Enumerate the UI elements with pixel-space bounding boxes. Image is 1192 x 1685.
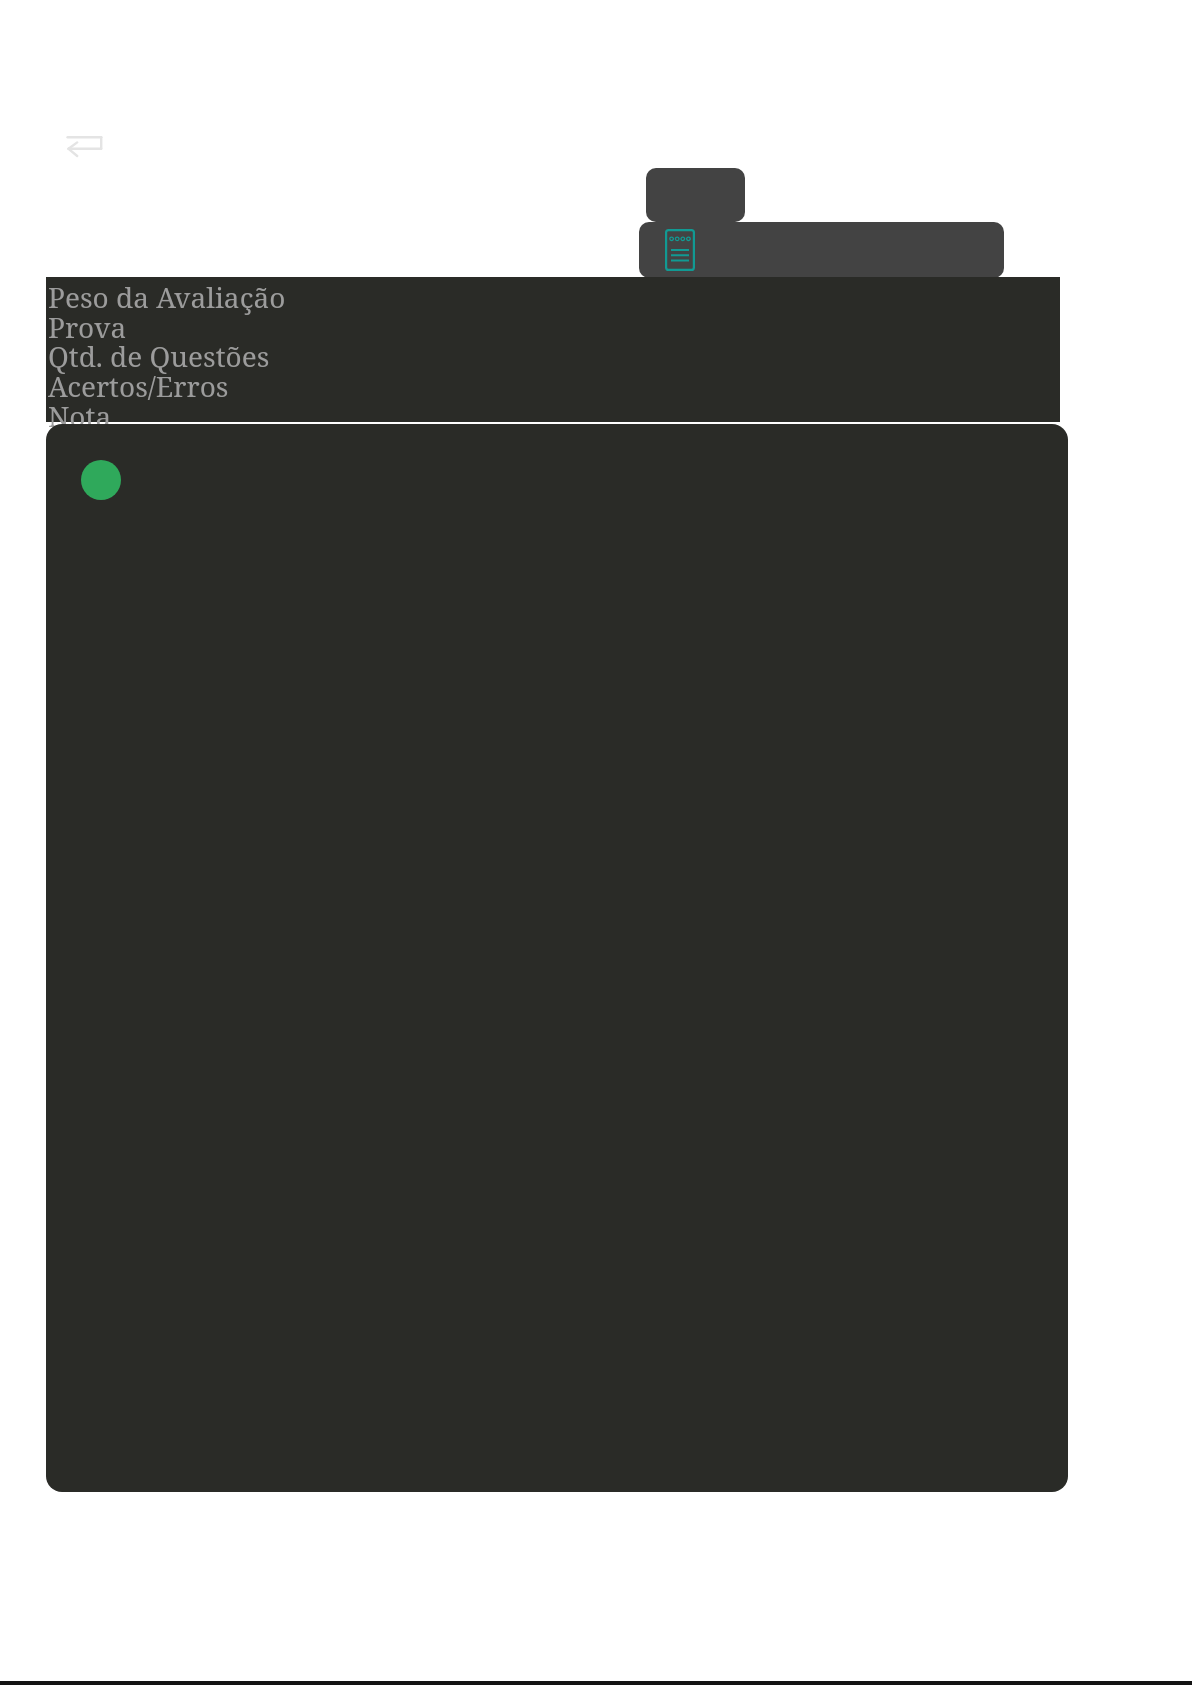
button[interactable]: Detalhes da avaliação bbox=[46, 424, 1068, 1492]
button[interactable]: Voltar bbox=[58, 124, 106, 164]
button[interactable]: Linha de avaliação bbox=[639, 222, 1004, 278]
staticText: Peso da Avaliação bbox=[48, 278, 286, 316]
staticText: Qtd. de Questões bbox=[48, 337, 270, 375]
staticText: Nota bbox=[48, 397, 112, 435]
staticText: Acertos/Erros bbox=[48, 367, 229, 405]
button[interactable]: Cabeçalho da tabela bbox=[646, 168, 745, 222]
staticText: Prova bbox=[48, 308, 127, 346]
